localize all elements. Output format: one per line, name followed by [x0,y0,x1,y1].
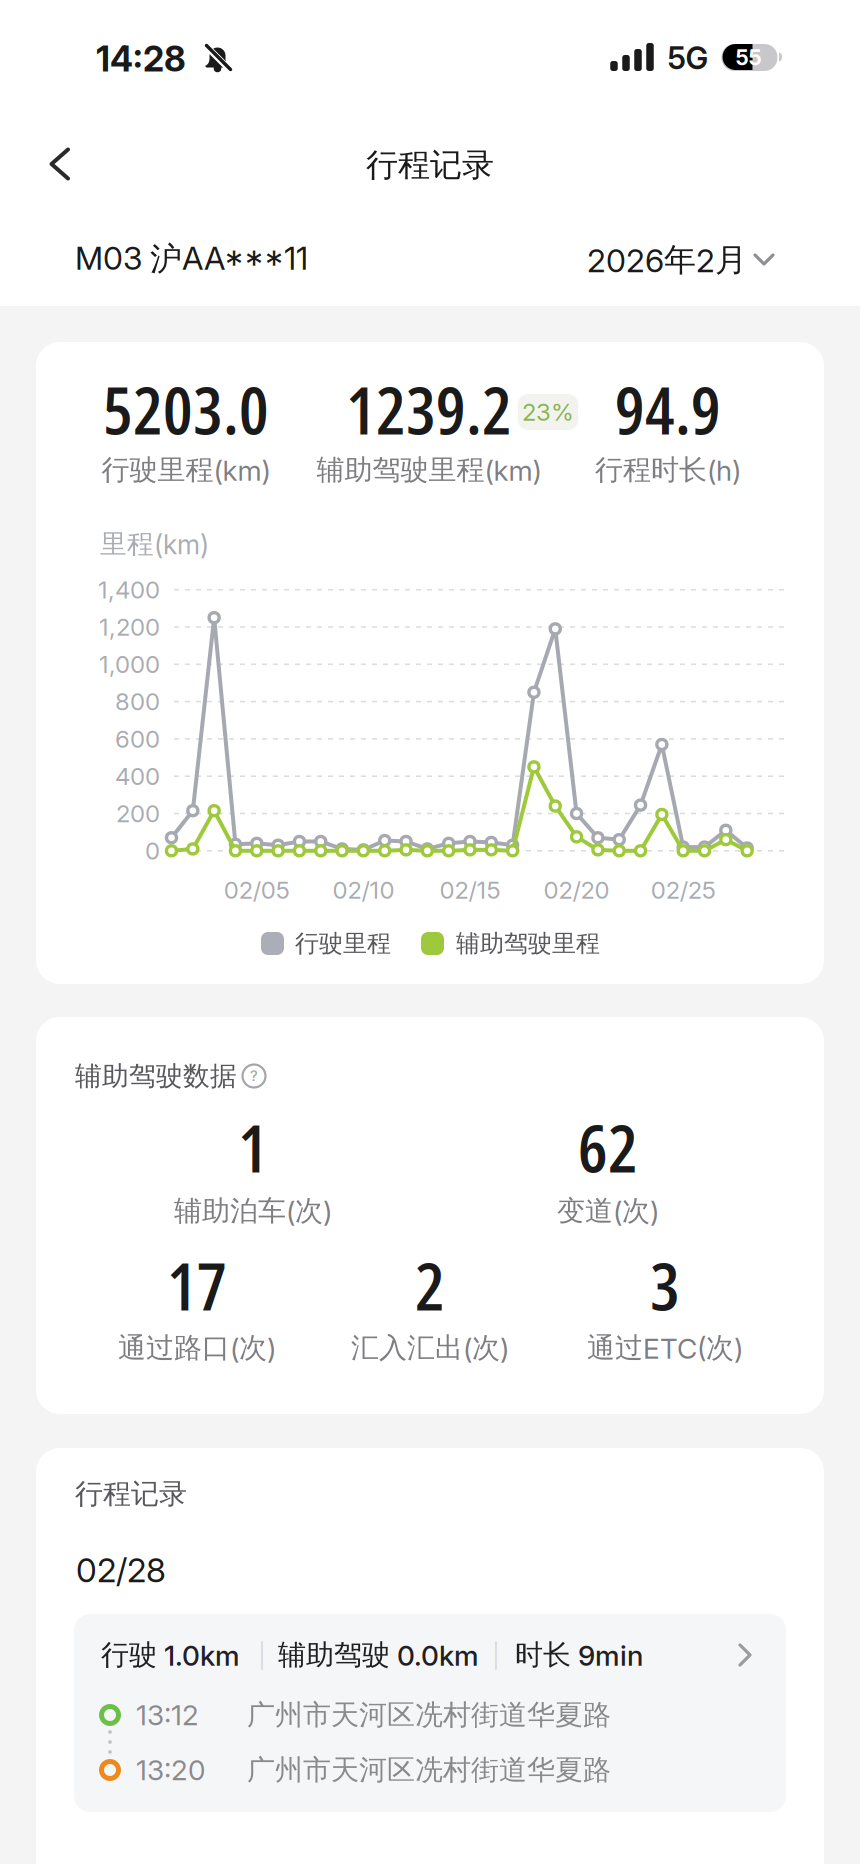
staticText: 17 [167,1240,227,1330]
staticText: 1,400 [98,575,160,604]
staticText: 800 [115,687,160,716]
staticText: 94.9 [615,364,721,454]
staticText: 400 [115,762,160,790]
staticText: 13:12 [136,1698,199,1731]
button[interactable]: 2026年2月 [587,240,775,280]
staticText: 通过路口(次) [118,1331,276,1365]
staticText: 辅助驾驶里程 [456,929,600,958]
staticText: 广州市天河区冼村街道华夏路 [247,1753,611,1787]
staticText: 2 [415,1240,445,1330]
button[interactable] [48,147,72,181]
staticText: 02/05 [224,876,290,904]
staticText: 02/28 [76,1550,166,1590]
staticText: 行程记录 [75,1477,187,1511]
staticText: 5G [667,40,708,76]
staticText: 1,200 [99,613,160,641]
staticText: 行程记录 [366,145,494,185]
staticText: 行程时长(h) [595,453,741,487]
staticText: 2026年2月 [587,240,747,280]
staticText: 广州市天河区冼村街道华夏路 [247,1698,611,1732]
staticText: 62 [578,1102,638,1192]
staticText: M03 沪AA***11 [75,239,308,279]
staticText: 02/15 [439,876,500,904]
staticText: 23% [522,398,574,426]
staticText: 55 [735,45,761,70]
staticText: | [492,1641,500,1669]
staticText: | [258,1641,266,1669]
staticText: 辅助泊车(次) [174,1194,332,1228]
staticText: 行驶里程(km) [101,453,270,487]
staticText: 1 [238,1102,268,1192]
button[interactable]: 行驶 1.0km [74,1614,786,1812]
staticText: 行驶 1.0km [101,1638,240,1672]
staticText: 0 [145,837,160,865]
staticText: ? [250,1067,258,1085]
staticText: 600 [115,725,160,753]
staticText: 3 [650,1240,680,1330]
staticText: 变道(次) [557,1194,659,1228]
staticText: 14:28 [96,39,186,79]
staticText: 辅助驾驶里程(km) [316,453,541,487]
staticText: 行驶里程 [295,929,391,958]
staticText: 里程(km) [100,528,209,560]
staticText: 汇入汇出(次) [351,1331,509,1365]
staticText: 02/10 [332,876,394,904]
staticText: 1239.2 [346,364,512,454]
staticText: 13:20 [136,1753,205,1786]
staticText: 5203.0 [103,364,269,454]
staticText: 通过ETC(次) [587,1331,743,1365]
staticText: 时长 9min [515,1638,643,1672]
staticText: 200 [116,799,160,828]
staticText: 1,000 [99,650,160,678]
button[interactable]: ? [241,1063,267,1089]
staticText: 02/20 [544,876,610,904]
staticText: 辅助驾驶 0.0km [278,1638,479,1672]
staticText: 辅助驾驶数据 [75,1060,237,1092]
staticText: 02/25 [651,876,716,904]
